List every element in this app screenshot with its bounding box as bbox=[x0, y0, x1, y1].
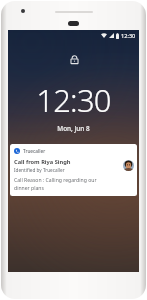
staticText: 12:30 bbox=[121, 32, 136, 40]
button[interactable]: Truecaller bbox=[10, 144, 137, 196]
staticText: 12:30 bbox=[8, 79, 139, 121]
staticText: Identified by Truecaller bbox=[14, 167, 65, 173]
staticText: Call Reason : Calling regarding our bbox=[14, 177, 97, 184]
staticText: Call from Riya Singh bbox=[14, 158, 71, 166]
staticText: Truecaller bbox=[23, 148, 46, 154]
button[interactable]: Device locked bbox=[66, 51, 82, 67]
staticText: dinner plans bbox=[14, 185, 44, 192]
staticText: Mon, Jun 8 bbox=[8, 124, 139, 133]
